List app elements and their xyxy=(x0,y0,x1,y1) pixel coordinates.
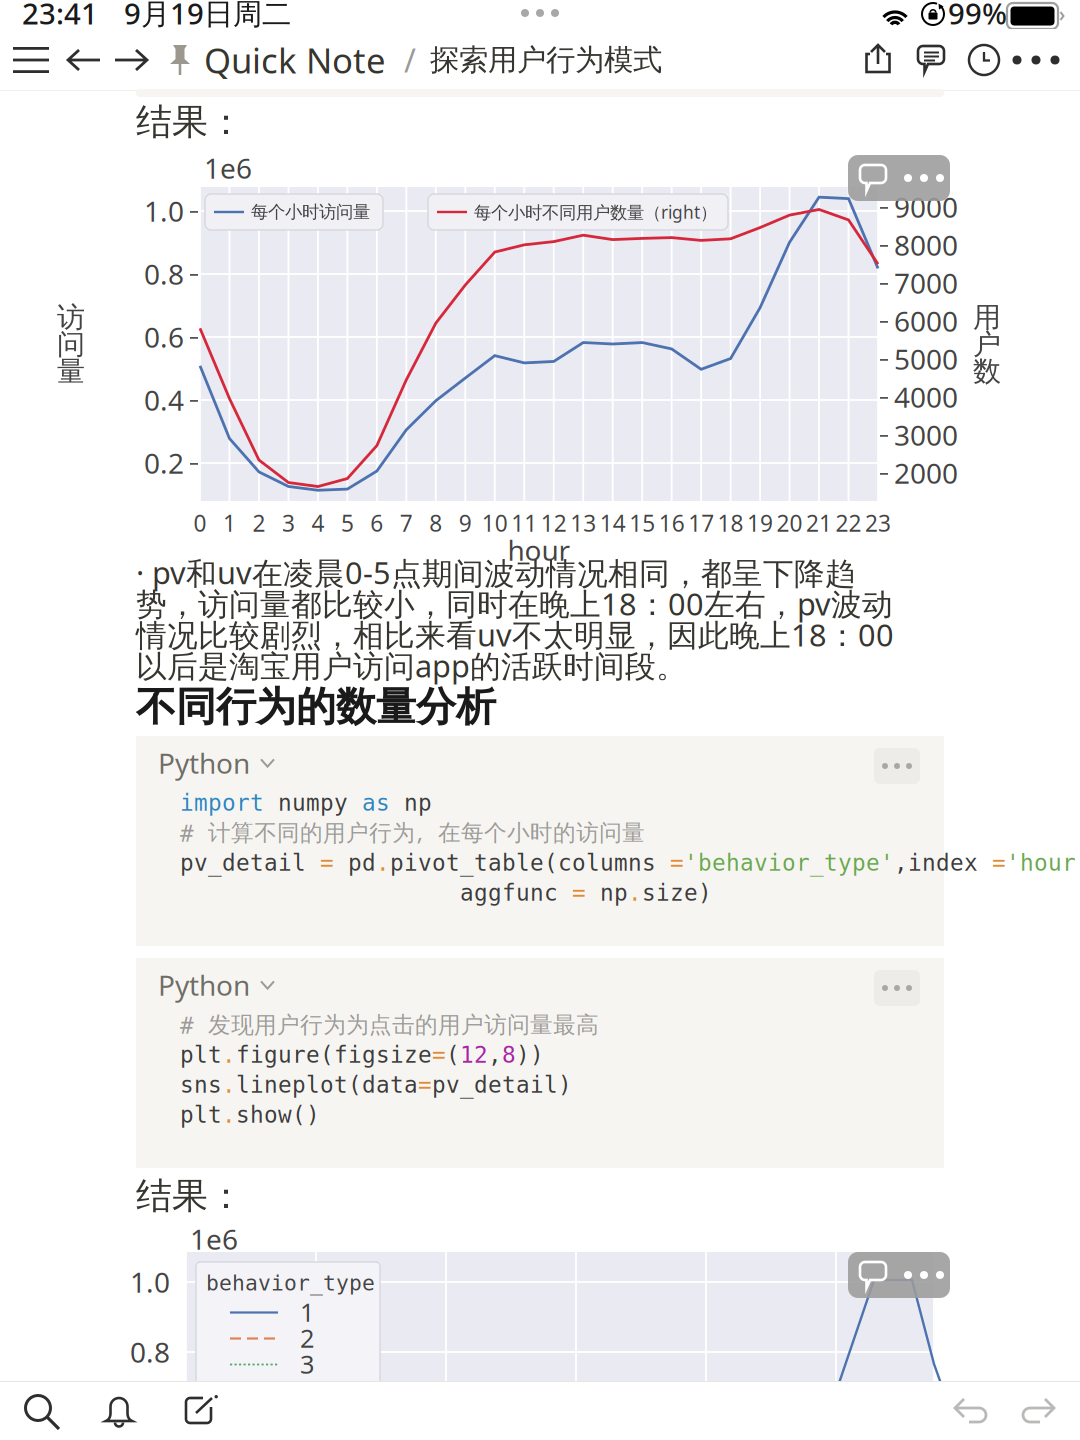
staticText: 2 xyxy=(300,1321,314,1355)
staticText: 'behavior_type' xyxy=(684,850,894,876)
staticText: / xyxy=(404,39,416,81)
button[interactable]: Quick Note xyxy=(166,29,418,91)
staticText: ( xyxy=(446,1042,460,1068)
staticText: np xyxy=(390,790,432,816)
staticText: 4 xyxy=(311,508,324,538)
staticText: ( xyxy=(544,850,558,876)
button[interactable]: Notifications xyxy=(89,1381,151,1440)
staticText: 0.6 xyxy=(144,318,184,356)
staticText: ( xyxy=(320,1042,334,1068)
staticText: = xyxy=(670,850,684,876)
staticText: . xyxy=(222,1072,236,1098)
staticText: 11 xyxy=(511,508,537,538)
staticText: index xyxy=(908,850,992,876)
staticText: 5000 xyxy=(894,340,958,378)
staticText: 户 xyxy=(973,327,1001,362)
button[interactable]: Block options xyxy=(898,155,950,201)
staticText: hour xyxy=(507,531,570,569)
staticText: 不同行为的数量分析 xyxy=(136,682,496,731)
button[interactable]: Undo xyxy=(942,1381,1004,1440)
staticText: 8 xyxy=(502,1042,516,1068)
button[interactable]: Add comment xyxy=(848,1252,898,1298)
staticText: 16 xyxy=(659,508,685,538)
staticText: pd xyxy=(334,850,376,876)
staticText: )) xyxy=(516,1042,544,1068)
staticText: 1 xyxy=(300,1295,314,1329)
staticText: 以后是淘宝用户访问app的活跃时间段。 xyxy=(136,645,687,686)
staticText: 情况比较剧烈，相比来看uv不太明显，因此晚上18：00 xyxy=(136,614,894,655)
button[interactable]: Version history xyxy=(960,29,1008,91)
staticText: 5 xyxy=(341,508,354,538)
staticText: 9000 xyxy=(894,188,958,226)
staticText: pv_detail xyxy=(432,1072,558,1098)
staticText: 结果： xyxy=(136,1174,244,1218)
button[interactable]: New page xyxy=(169,1381,231,1440)
staticText: 8000 xyxy=(894,226,958,264)
staticText: 1.0 xyxy=(144,192,184,230)
staticText: 19 xyxy=(747,508,773,538)
staticText: Quick Note xyxy=(204,37,386,83)
staticText: Python xyxy=(158,966,250,1004)
button[interactable]: Block options xyxy=(898,1252,950,1298)
staticText: lineplot xyxy=(236,1072,348,1098)
staticText: 量 xyxy=(57,354,85,389)
staticText: aggfunc xyxy=(180,880,572,906)
staticText: = xyxy=(418,1072,432,1098)
staticText: 7000 xyxy=(894,264,958,302)
staticText: ) xyxy=(698,880,712,906)
button[interactable]: Redo xyxy=(1005,1381,1067,1440)
staticText: 2 xyxy=(252,508,265,538)
staticText: 22 xyxy=(835,508,861,538)
staticText: 0.2 xyxy=(144,444,184,482)
staticText: 6000 xyxy=(894,302,958,340)
staticText: 3000 xyxy=(894,416,958,454)
button[interactable]: More options xyxy=(1010,29,1062,91)
staticText: 探索用户行为模式 xyxy=(430,42,662,78)
staticText: 10 xyxy=(482,508,508,538)
staticText: 23:41 xyxy=(22,0,98,32)
button[interactable]: 探索用户行为模式 xyxy=(430,29,670,91)
staticText: ) xyxy=(558,1072,572,1098)
staticText: 21 xyxy=(806,508,832,538)
staticText: numpy xyxy=(264,790,362,816)
staticText: = xyxy=(432,1042,446,1068)
staticText: 6 xyxy=(370,508,383,538)
staticText: = xyxy=(572,880,586,906)
staticText: 访 xyxy=(57,300,85,335)
staticText: np xyxy=(586,880,628,906)
button[interactable]: Block options xyxy=(874,748,920,784)
staticText: 15 xyxy=(629,508,655,538)
staticText: pv_detail xyxy=(180,850,320,876)
staticText: columns xyxy=(558,850,670,876)
staticText: 0.8 xyxy=(144,255,184,293)
button[interactable]: Block options xyxy=(874,970,920,1006)
staticText: 4 xyxy=(300,1373,314,1407)
staticText: ( xyxy=(348,1072,362,1098)
button[interactable]: Add comment xyxy=(848,155,898,201)
button[interactable]: Search xyxy=(11,1381,73,1440)
staticText: 0.8 xyxy=(130,1333,170,1371)
staticText: 1.0 xyxy=(130,1263,170,1301)
button[interactable]: Menu xyxy=(7,29,55,91)
staticText: pivot_table xyxy=(390,850,544,876)
staticText: figure xyxy=(236,1042,320,1068)
button[interactable]: Comments xyxy=(906,29,958,91)
staticText: # 计算不同的用户行为，在每个小时的访问量 xyxy=(180,819,645,847)
staticText: 每个小时访问量 xyxy=(251,201,370,223)
staticText: 1 xyxy=(223,508,236,538)
staticText: 9 xyxy=(459,508,472,538)
button[interactable]: Back xyxy=(61,29,107,91)
staticText: as xyxy=(362,790,390,816)
button[interactable]: Share xyxy=(852,29,904,91)
button[interactable]: Forward xyxy=(108,29,154,91)
staticText: plt xyxy=(180,1102,222,1128)
staticText: 12 xyxy=(460,1042,488,1068)
staticText: import xyxy=(180,790,264,816)
staticText: show xyxy=(236,1102,292,1128)
staticText: 1e6 xyxy=(190,1220,238,1258)
button[interactable]: Python xyxy=(158,968,358,1002)
button[interactable]: Python xyxy=(158,746,358,780)
staticText: data xyxy=(362,1072,418,1098)
staticText: . xyxy=(628,880,642,906)
staticText: . xyxy=(376,850,390,876)
